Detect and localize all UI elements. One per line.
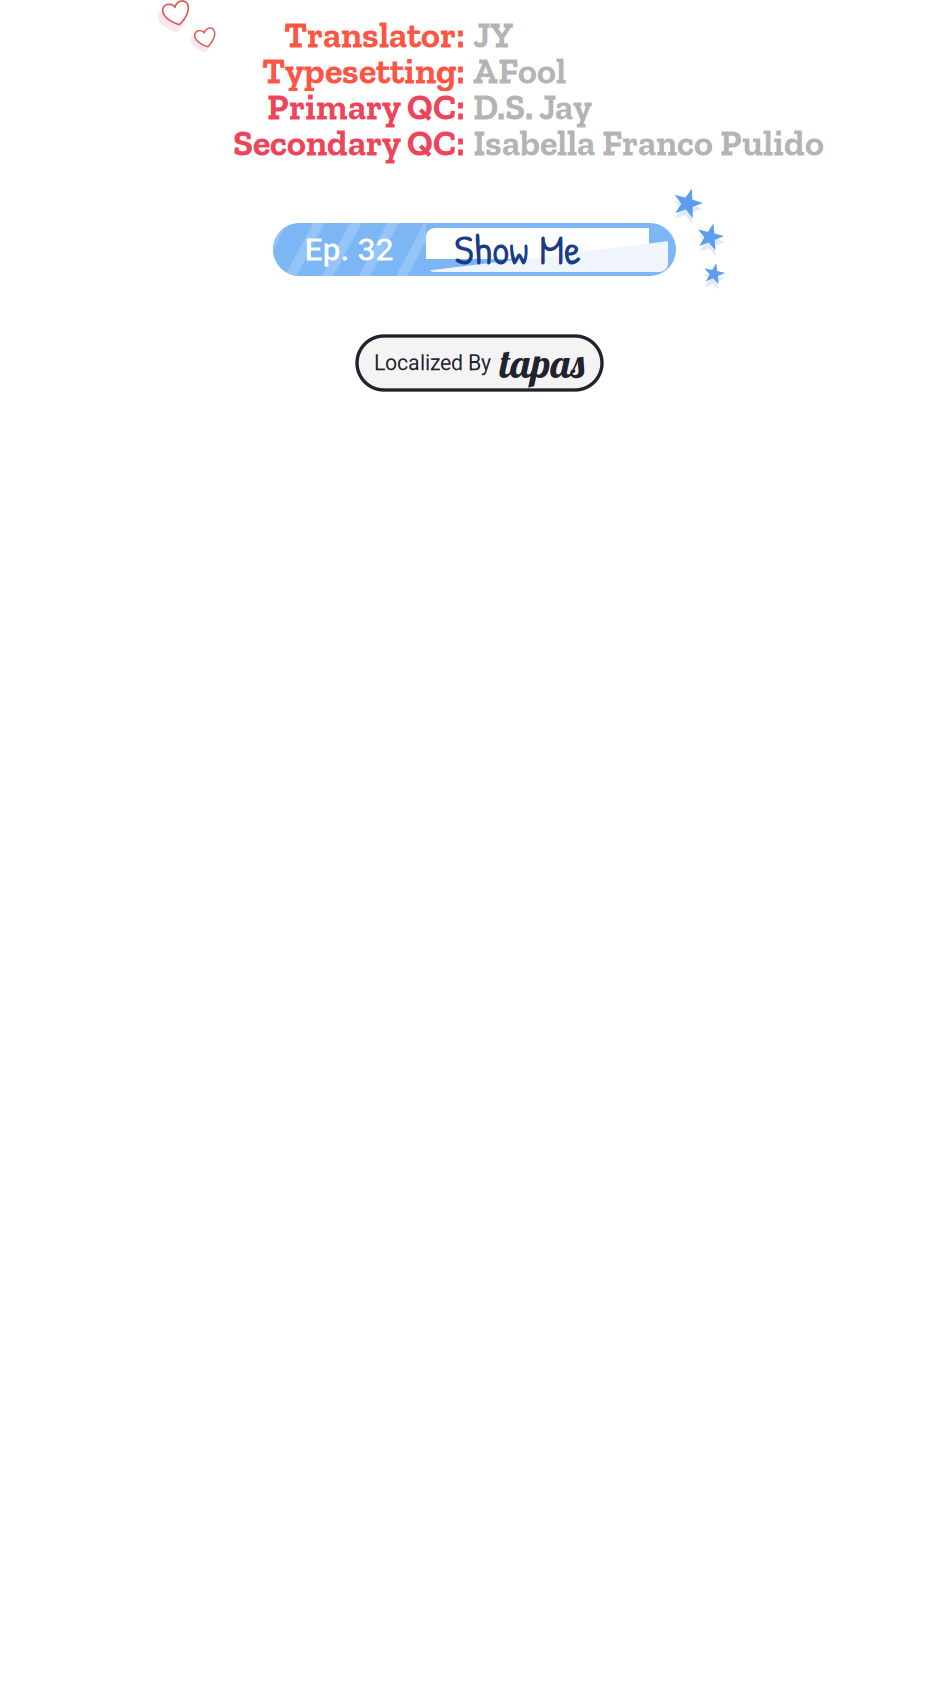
staticText: Typesetting:: [262, 49, 465, 93]
staticText: AFool: [473, 49, 566, 93]
staticText: Isabella Franco Pulido: [473, 121, 824, 165]
staticText: Translator:: [284, 13, 465, 57]
button[interactable]: Localized By: [357, 336, 602, 390]
button[interactable]: Ep. 32: [273, 223, 676, 276]
staticText: Localized By: [374, 350, 491, 375]
staticText: Ep. 32: [304, 231, 393, 268]
staticText: Primary QC:: [267, 85, 465, 129]
staticText: JY: [473, 13, 513, 57]
staticText: Show Me: [454, 220, 581, 278]
staticText: Secondary QC:: [233, 121, 465, 165]
staticText: tapas: [499, 338, 587, 388]
staticText: D.S. Jay: [473, 85, 592, 129]
